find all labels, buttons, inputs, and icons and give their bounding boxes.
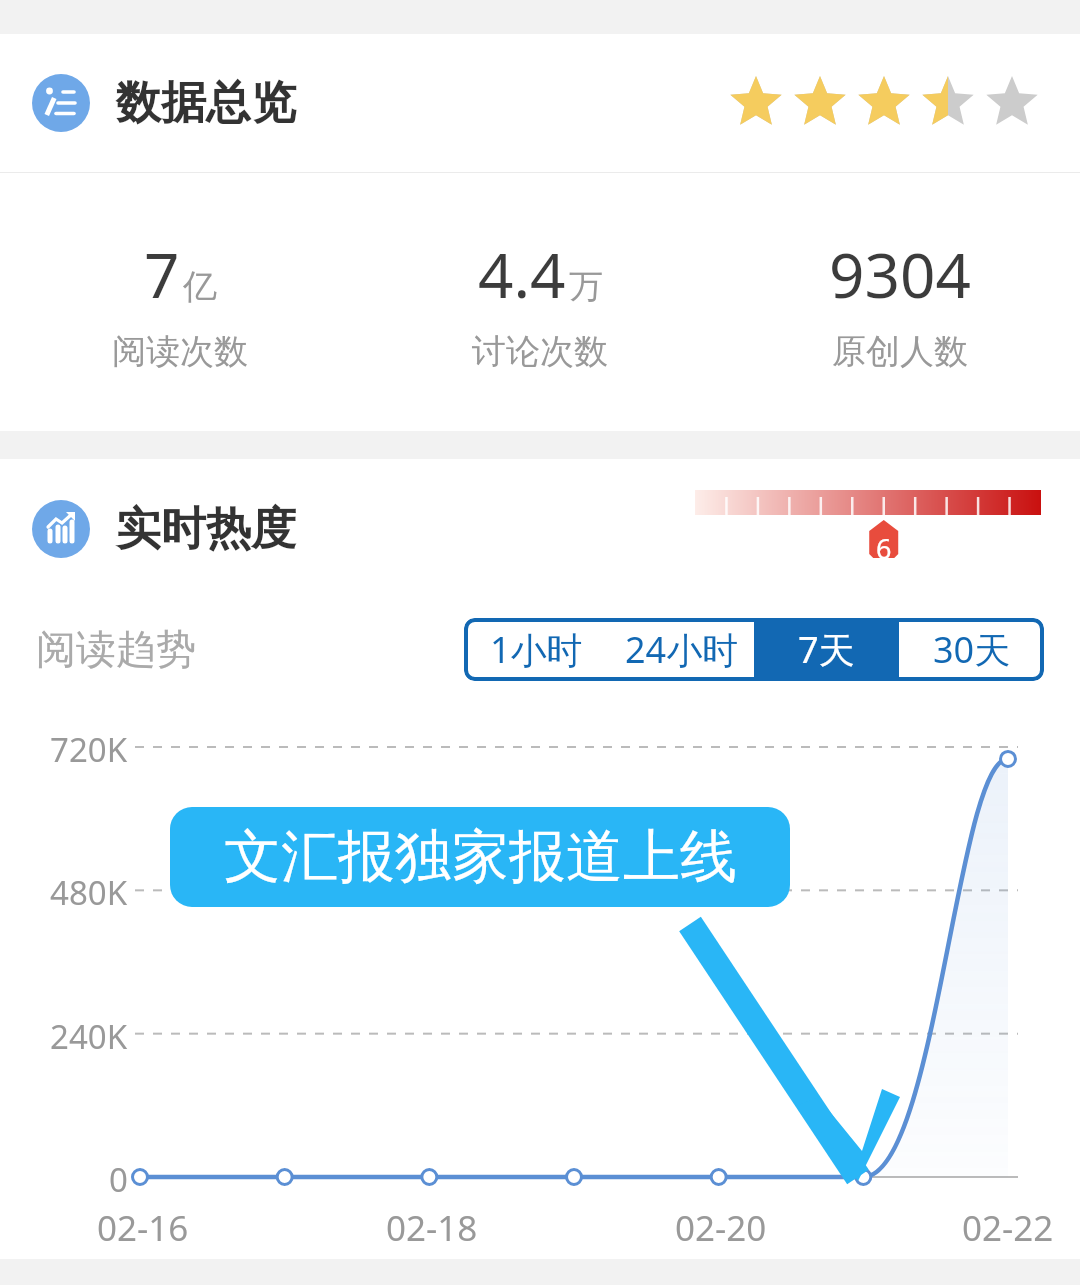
staticText: 02-20 <box>675 1204 767 1252</box>
button[interactable]: 24小时 <box>609 618 754 681</box>
staticText: 30天 <box>933 625 1011 674</box>
staticText: 9304 <box>829 232 971 316</box>
button[interactable]: 文汇报独家报道上线 <box>170 807 790 907</box>
staticText: 7 <box>144 232 180 316</box>
staticText: 阅读趋势 <box>36 624 196 674</box>
staticText: 阅读次数 <box>112 330 248 373</box>
button[interactable]: 7天 <box>754 618 899 681</box>
button[interactable]: 1小时 <box>464 618 609 681</box>
staticText: 万 <box>569 265 603 308</box>
staticText: 讨论次数 <box>472 330 608 373</box>
button[interactable]: 30天 <box>899 618 1044 681</box>
staticText: 02-16 <box>97 1204 189 1252</box>
staticText: 数据总览 <box>116 75 296 132</box>
staticText: 0 <box>109 1157 128 1202</box>
staticText: 7天 <box>798 625 855 674</box>
staticText: 02-22 <box>962 1204 1054 1252</box>
staticText: 480K <box>50 870 128 915</box>
staticText: 240K <box>50 1014 128 1059</box>
staticText: 6 <box>876 530 892 567</box>
staticText: 实时热度 <box>116 501 296 558</box>
staticText: 720K <box>50 727 128 772</box>
staticText: 原创人数 <box>832 330 968 373</box>
staticText: 1小时 <box>490 625 583 674</box>
staticText: 4.4 <box>478 232 566 316</box>
button[interactable]: 数据总览 <box>0 34 1080 172</box>
staticText: 24小时 <box>625 625 739 674</box>
staticText: 文汇报独家报道上线 <box>224 821 737 893</box>
staticText: 亿 <box>183 265 217 308</box>
staticText: 02-18 <box>386 1204 478 1252</box>
